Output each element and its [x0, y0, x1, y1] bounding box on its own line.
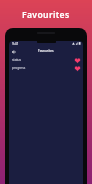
staticText: 9:41 — [12, 41, 19, 46]
staticText: status — [12, 58, 22, 62]
staticText: Favourites — [38, 49, 54, 53]
button[interactable]: Back — [10, 48, 17, 55]
button[interactable]: progress — [9, 64, 83, 72]
staticText: Favourites — [22, 9, 70, 21]
button[interactable]: status — [9, 56, 83, 64]
staticText: progress — [12, 66, 26, 70]
